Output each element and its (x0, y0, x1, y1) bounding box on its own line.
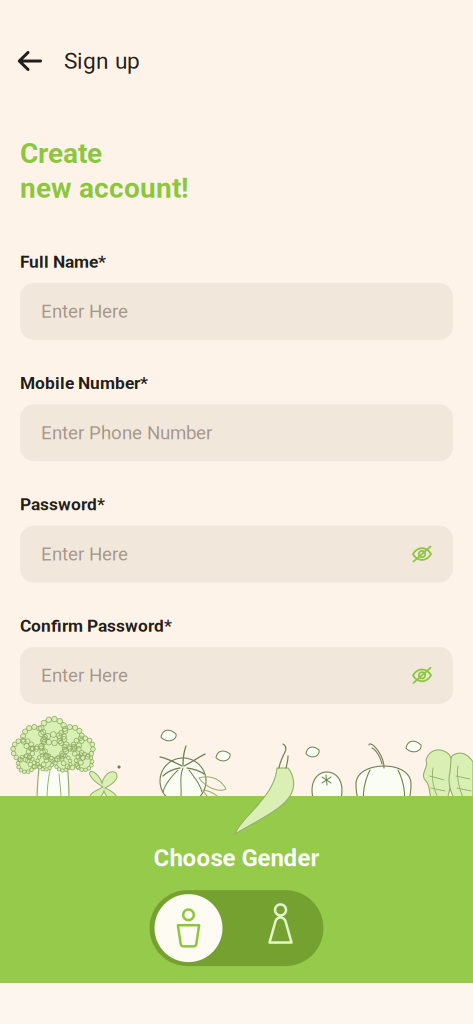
staticText: Enter Phone Number (41, 422, 212, 444)
staticText: Confirm Password* (20, 616, 172, 636)
staticText: Mobile Number* (20, 373, 148, 393)
button[interactable]: Enter Here (20, 283, 453, 340)
staticText: Enter Here (41, 664, 128, 686)
staticText: Enter Here (41, 543, 128, 565)
button[interactable]: Enter Here (20, 647, 453, 704)
staticText: Sign up (64, 48, 140, 74)
staticText: Choose Gender (153, 844, 319, 872)
button[interactable]: Choose Gender (149, 890, 323, 966)
button[interactable]: Back (8, 39, 52, 83)
staticText: Create (20, 137, 102, 170)
staticText: Password* (20, 494, 105, 514)
button[interactable]: Enter Here (20, 526, 453, 583)
staticText: new account! (20, 172, 189, 205)
staticText: Enter Here (41, 300, 128, 322)
staticText: Full Name* (20, 252, 106, 272)
button[interactable]: Enter Phone Number (20, 404, 453, 461)
